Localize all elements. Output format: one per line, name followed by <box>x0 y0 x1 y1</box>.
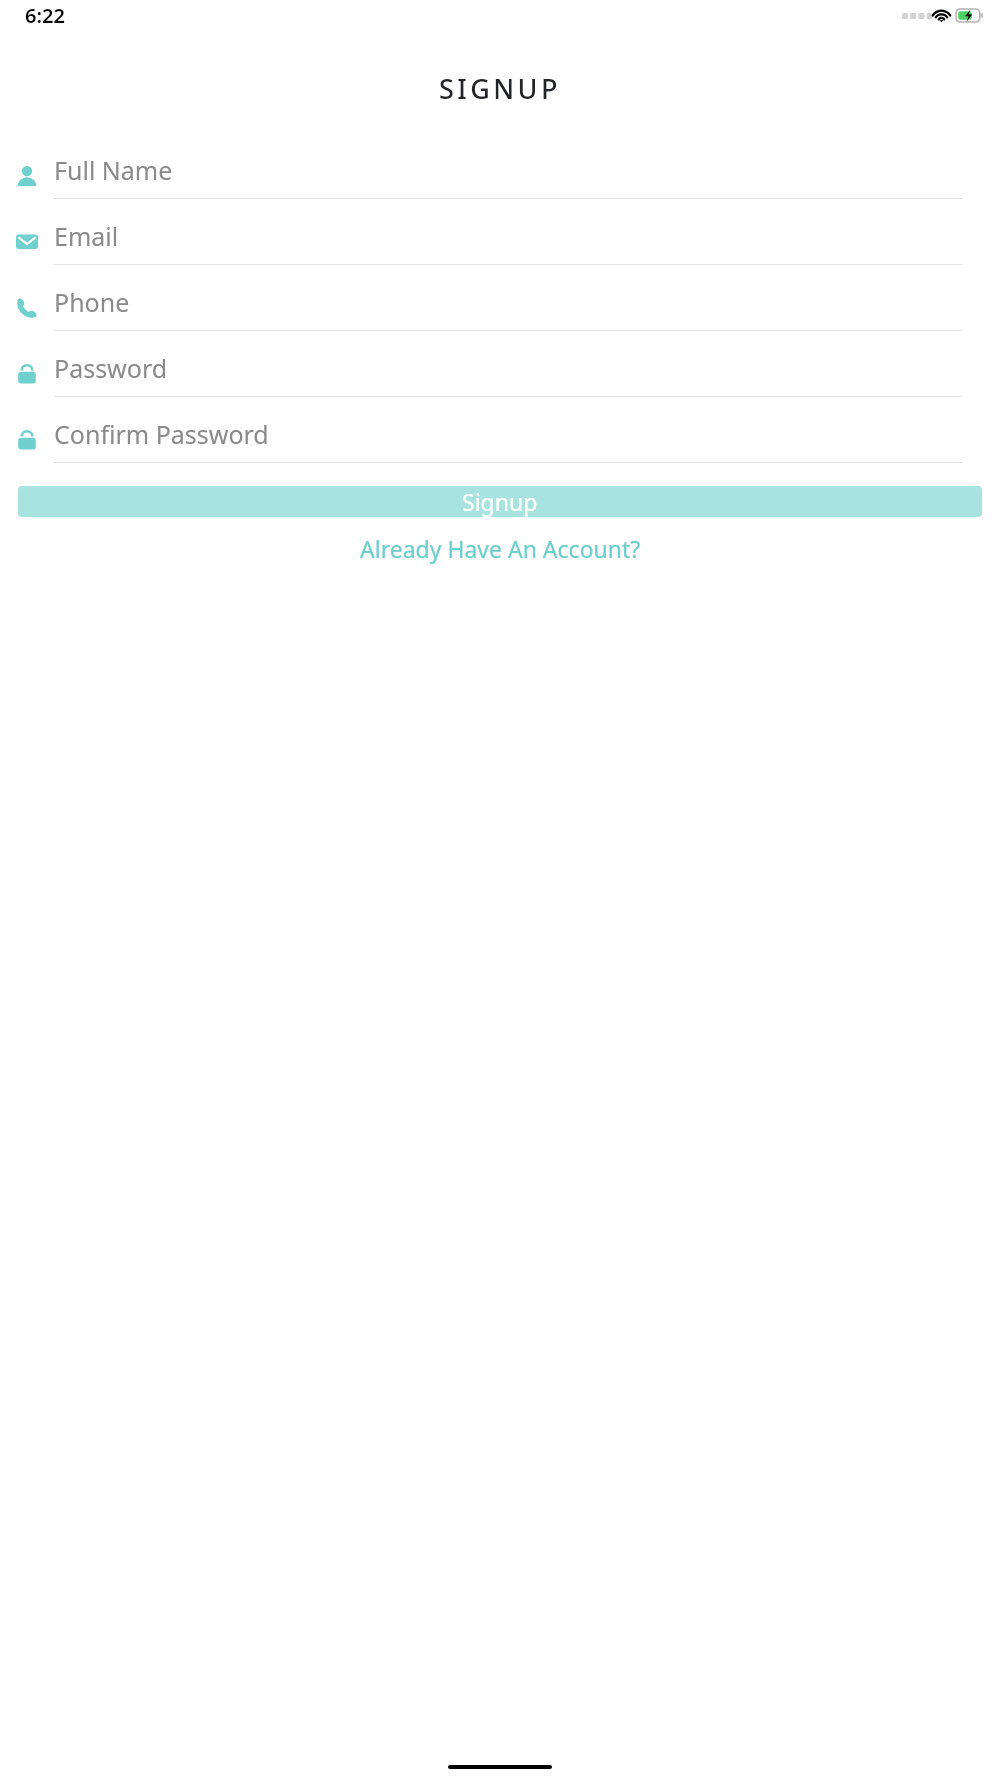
button[interactable]: Email <box>0 209 1000 275</box>
button[interactable]: Password <box>0 407 1000 473</box>
staticText: Signup <box>462 486 538 517</box>
other: Email <box>0 209 54 275</box>
other: Password <box>0 407 54 473</box>
staticText: SIGNUP <box>439 70 561 107</box>
staticText: 6:22 <box>25 2 65 29</box>
button[interactable]: Phone <box>0 275 1000 341</box>
button[interactable]: Already Have An Account? <box>0 533 1000 564</box>
staticText: Full Name <box>54 153 173 187</box>
staticText: Password <box>54 351 168 385</box>
other: Name <box>0 143 54 209</box>
other: Password <box>0 341 54 407</box>
staticText: Confirm Password <box>54 417 269 451</box>
button[interactable]: Password <box>0 341 1000 407</box>
staticText: Email <box>54 219 119 253</box>
button[interactable]: Signup <box>18 486 982 517</box>
staticText: Phone <box>54 285 130 319</box>
staticText: Already Have An Account? <box>360 533 641 564</box>
other: Phone <box>0 275 54 341</box>
button[interactable]: Name <box>0 143 1000 209</box>
